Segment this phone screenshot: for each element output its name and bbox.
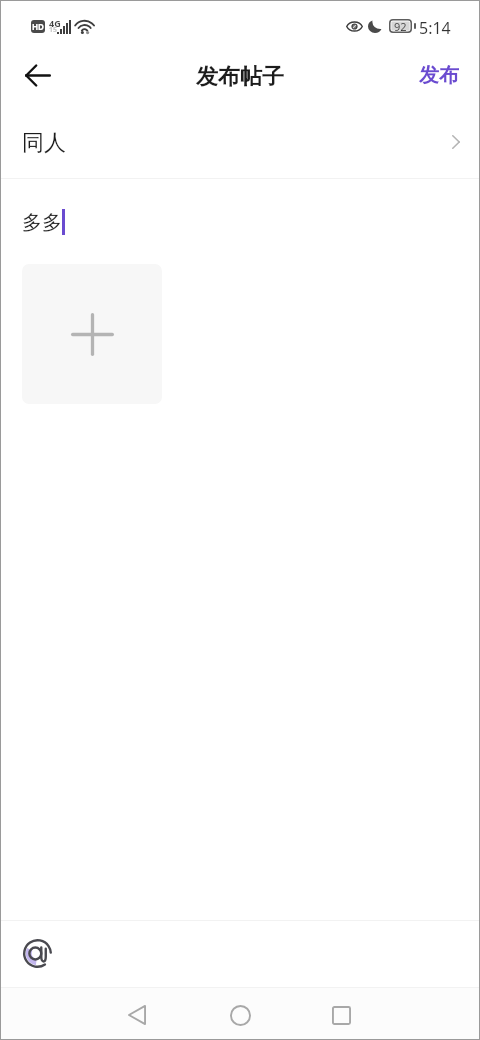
button[interactable]: Mention xyxy=(14,930,60,976)
staticText: 多多 xyxy=(22,210,62,235)
button[interactable]: 发布 xyxy=(398,49,480,102)
button[interactable]: Recents xyxy=(318,992,364,1038)
staticText: HD xyxy=(32,21,44,32)
button[interactable]: Add image xyxy=(22,264,162,404)
staticText: 4G xyxy=(49,17,61,29)
staticText: 5:14 xyxy=(419,17,451,39)
button[interactable]: Back xyxy=(13,50,63,100)
staticText: 发布 xyxy=(419,63,459,88)
staticText: 发布帖子 xyxy=(196,63,284,91)
button[interactable]: Home xyxy=(217,992,263,1038)
button[interactable]: Back xyxy=(114,992,160,1038)
button[interactable]: Post content xyxy=(0,179,480,259)
staticText: 同人 xyxy=(22,129,66,157)
button[interactable]: 同人 xyxy=(0,104,480,178)
staticText: 15 xyxy=(49,25,58,35)
staticText: 92 xyxy=(394,19,407,33)
